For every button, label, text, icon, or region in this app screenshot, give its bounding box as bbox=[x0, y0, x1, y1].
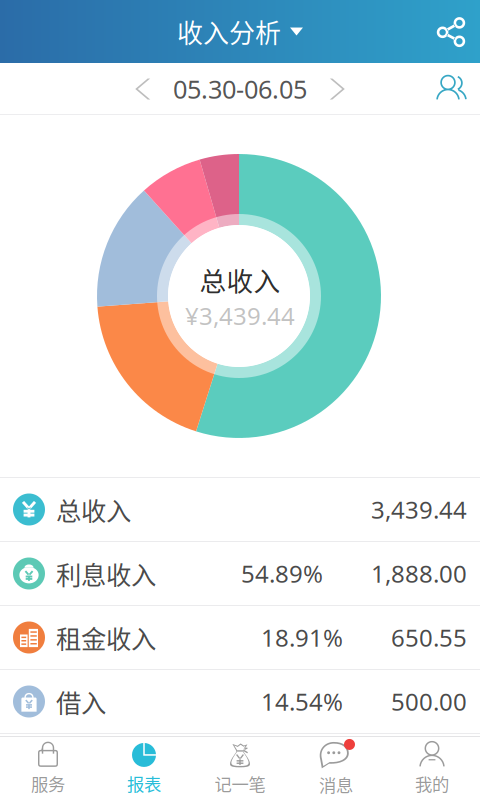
staticText: 05.30-06.05 bbox=[173, 72, 307, 106]
staticText: 收入分析 bbox=[177, 13, 281, 50]
button[interactable]: 利息收入 bbox=[0, 542, 480, 606]
button[interactable]: 租金收入 bbox=[0, 606, 480, 670]
staticText: 消息 bbox=[319, 772, 353, 797]
button[interactable]: 消息 bbox=[288, 736, 384, 800]
button[interactable]: Share bbox=[422, 0, 480, 63]
staticText: 我的 bbox=[415, 771, 449, 796]
button[interactable]: 我的 bbox=[384, 736, 480, 800]
staticText: 利息收入 bbox=[56, 555, 156, 592]
button[interactable]: 服务 bbox=[0, 736, 96, 800]
staticText: ¥3,439.44 bbox=[185, 300, 295, 332]
button[interactable]: 总收入 bbox=[0, 478, 480, 542]
button[interactable]: Next period bbox=[310, 63, 362, 115]
staticText: 租金收入 bbox=[56, 619, 156, 656]
staticText: 服务 bbox=[31, 771, 65, 796]
staticText: 1,888.00 bbox=[371, 558, 467, 589]
staticText: 记一笔 bbox=[214, 771, 265, 796]
staticText: 14.54% bbox=[261, 686, 343, 717]
button[interactable]: 收入分析 bbox=[177, 0, 303, 63]
button[interactable]: 借入 bbox=[0, 670, 480, 734]
staticText: 650.55 bbox=[391, 622, 467, 653]
staticText: 500.00 bbox=[391, 686, 467, 717]
button[interactable]: Members bbox=[420, 63, 480, 115]
staticText: 报表 bbox=[127, 771, 161, 796]
button[interactable]: 报表 bbox=[96, 736, 192, 800]
staticText: 借入 bbox=[56, 683, 106, 720]
staticText: 总收入 bbox=[199, 260, 280, 299]
button[interactable]: 记一笔 bbox=[192, 736, 288, 800]
staticText: 18.91% bbox=[261, 622, 343, 653]
staticText: 总收入 bbox=[56, 491, 131, 528]
staticText: 54.89% bbox=[241, 558, 323, 589]
staticText: 3,439.44 bbox=[371, 494, 467, 525]
button[interactable]: Previous period bbox=[118, 63, 170, 115]
